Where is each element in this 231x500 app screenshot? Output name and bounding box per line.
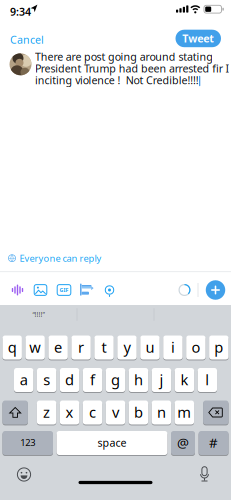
staticText: i: [171, 337, 175, 357]
staticText: y: [123, 337, 130, 357]
button[interactable]: j: [152, 367, 171, 392]
button[interactable]: space: [57, 430, 167, 455]
staticText: 9:34: [10, 4, 31, 19]
staticText: k: [180, 370, 188, 389]
staticText: n: [157, 402, 166, 422]
staticText: o: [191, 337, 200, 357]
staticText: c: [89, 402, 96, 422]
button[interactable]: x: [60, 400, 79, 425]
button[interactable]: Add another Tweet: [206, 280, 225, 300]
button[interactable]: Add a GIF: [56, 282, 72, 298]
button[interactable]: a: [14, 367, 33, 392]
staticText: Cancel: [10, 32, 44, 47]
button[interactable]: v: [106, 400, 125, 425]
button[interactable]: Dictate: [198, 466, 210, 482]
button[interactable]: o: [186, 335, 206, 360]
staticText: l: [205, 370, 209, 389]
button[interactable]: Delete: [203, 400, 228, 425]
staticText: d: [65, 370, 74, 389]
button[interactable]: z: [37, 400, 56, 425]
button[interactable]: e: [48, 335, 68, 360]
button[interactable]: g: [106, 367, 125, 392]
button[interactable]: y: [117, 335, 137, 360]
staticText: Everyone can reply: [19, 252, 101, 264]
staticText: inciting violence ! Not Credible!!!!: [35, 73, 199, 87]
button[interactable]: Record voice: [9, 282, 25, 298]
staticText: 123: [20, 436, 35, 449]
staticText: f: [90, 370, 95, 389]
staticText: p: [214, 337, 223, 357]
button[interactable]: Everyone can reply: [6, 252, 103, 264]
button[interactable]: Add photos or video: [32, 282, 48, 298]
button[interactable]: 123: [2, 430, 53, 455]
staticText: j: [159, 370, 163, 389]
button[interactable]: f: [83, 367, 102, 392]
button[interactable]: w: [25, 335, 45, 360]
button[interactable]: c: [83, 400, 102, 425]
button[interactable]: Add poll: [79, 282, 95, 298]
button[interactable]: d: [60, 367, 79, 392]
staticText: w: [29, 337, 41, 357]
button[interactable]: h: [129, 367, 148, 392]
button[interactable]: Cancel: [6, 28, 48, 51]
button[interactable]: t: [94, 335, 114, 360]
button[interactable]: Tweet: [175, 30, 221, 47]
staticText: q: [8, 337, 17, 357]
button[interactable]: “!!!!”: [3, 305, 73, 323]
button[interactable]: b: [129, 400, 148, 425]
button[interactable]: Shift: [2, 400, 28, 425]
button[interactable]: @: [171, 430, 195, 455]
button[interactable]: k: [175, 367, 194, 392]
button[interactable]: u: [140, 335, 160, 360]
button[interactable]: r: [71, 335, 91, 360]
staticText: b: [134, 402, 143, 422]
staticText: s: [43, 370, 50, 389]
button[interactable]: Tag location: [101, 282, 117, 298]
staticText: President Trump had been arrested fir I: [35, 61, 229, 75]
staticText: a: [20, 370, 28, 389]
staticText: m: [177, 402, 191, 422]
staticText: h: [134, 370, 143, 389]
staticText: @: [177, 434, 189, 451]
staticText: x: [66, 402, 74, 422]
staticText: “!!!!”: [32, 310, 44, 319]
button[interactable]: l: [198, 367, 217, 392]
staticText: v: [112, 402, 119, 422]
staticText: z: [43, 402, 50, 422]
staticText: Tweet: [182, 31, 214, 46]
staticText: u: [145, 337, 154, 357]
staticText: r: [78, 337, 84, 357]
staticText: e: [54, 337, 62, 357]
staticText: #: [209, 434, 218, 451]
button[interactable]: q: [2, 335, 22, 360]
button[interactable]: m: [175, 400, 194, 425]
staticText: space: [97, 435, 126, 450]
staticText: t: [101, 337, 106, 357]
button[interactable]: n: [152, 400, 171, 425]
button[interactable]: Emoji: [16, 466, 32, 482]
button[interactable]: #: [199, 430, 228, 455]
staticText: There are post going around stating: [35, 50, 213, 64]
staticText: g: [111, 370, 120, 389]
button[interactable]: p: [209, 335, 228, 360]
button[interactable]: s: [37, 367, 56, 392]
staticText: GIF: [59, 286, 68, 294]
button[interactable]: i: [163, 335, 183, 360]
